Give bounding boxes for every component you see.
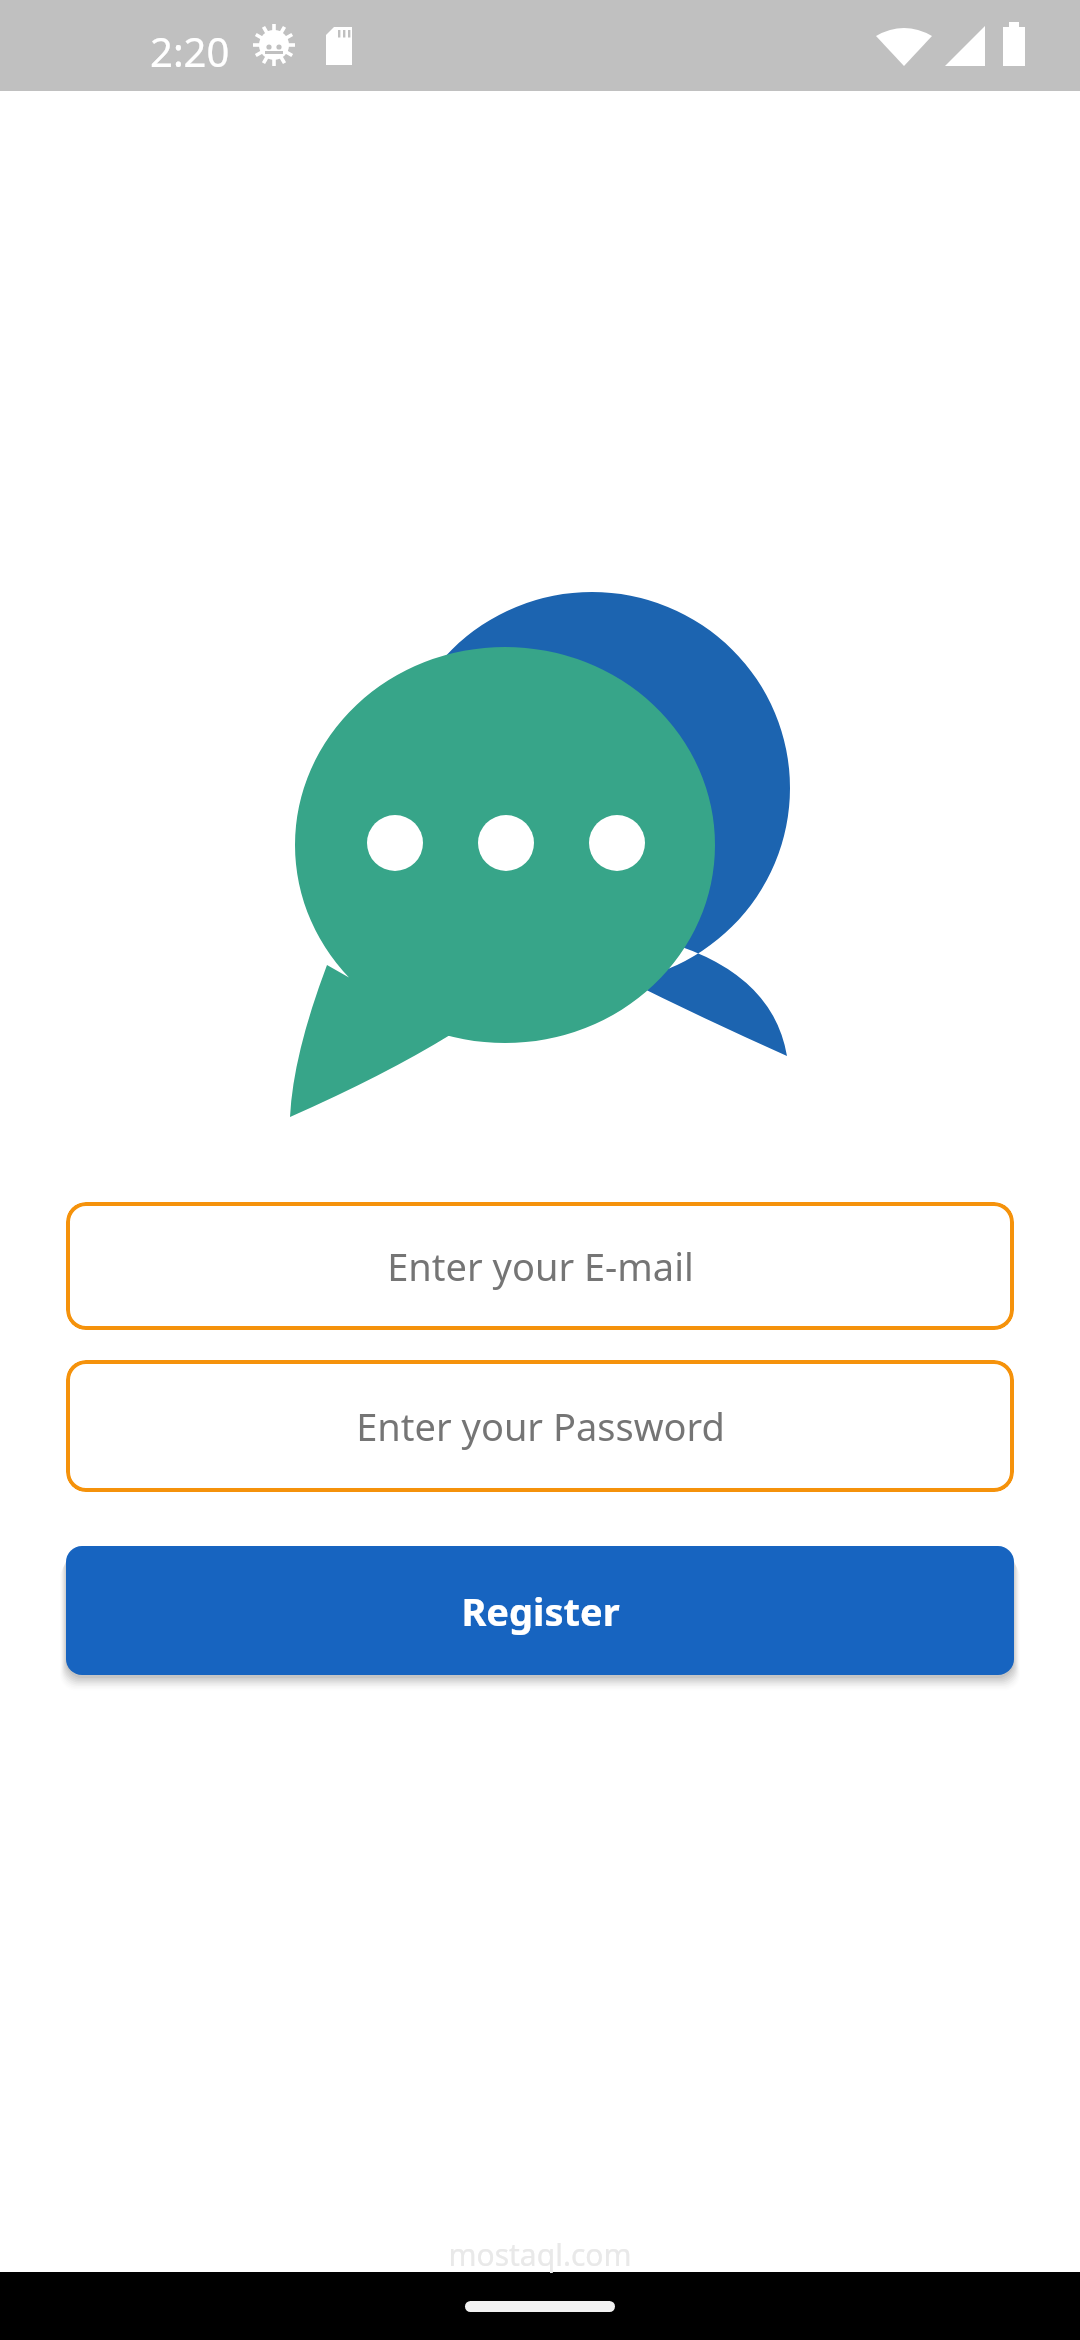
staticText: 2:20 <box>150 24 230 70</box>
staticText: Enter your Password <box>356 1400 725 1452</box>
staticText: Enter your E-mail <box>387 1240 694 1292</box>
staticText: Register <box>461 1585 620 1637</box>
button[interactable]: Enter your E-mail <box>66 1202 1014 1330</box>
button[interactable]: Register <box>66 1546 1014 1675</box>
button[interactable]: Enter your Password <box>66 1360 1014 1492</box>
staticText: mostaql.com <box>448 2234 632 2275</box>
